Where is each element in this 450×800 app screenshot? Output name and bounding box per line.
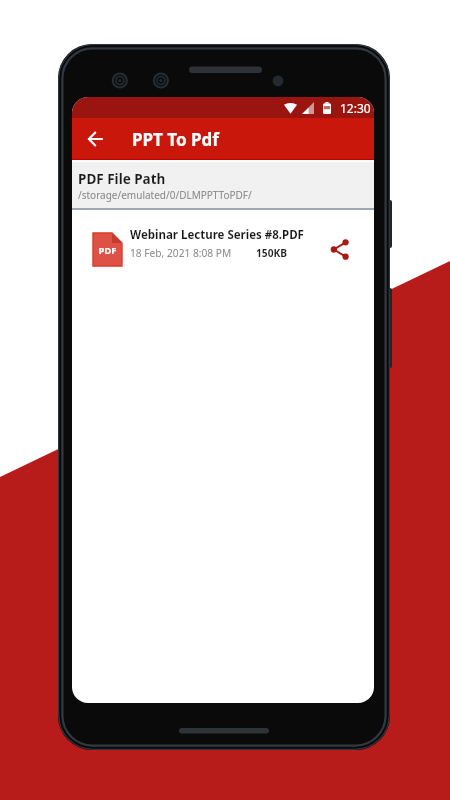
staticText: Webinar Lecture Series #8.PDF [130,227,304,243]
button[interactable]: Back [80,124,110,154]
staticText: 150KB [256,246,288,260]
staticText: 12:30 [340,100,371,116]
staticText: /storage/emulated/0/DLMPPTToPDF/ [78,188,252,202]
staticText: 18 Feb, 2021 8:08 PM [130,246,232,260]
button[interactable]: Share [324,234,354,264]
button[interactable]: PDF [72,210,374,280]
staticText: PDF [98,244,117,257]
staticText: PDF File Path [78,170,166,188]
staticText: PPT To Pdf [132,128,219,151]
